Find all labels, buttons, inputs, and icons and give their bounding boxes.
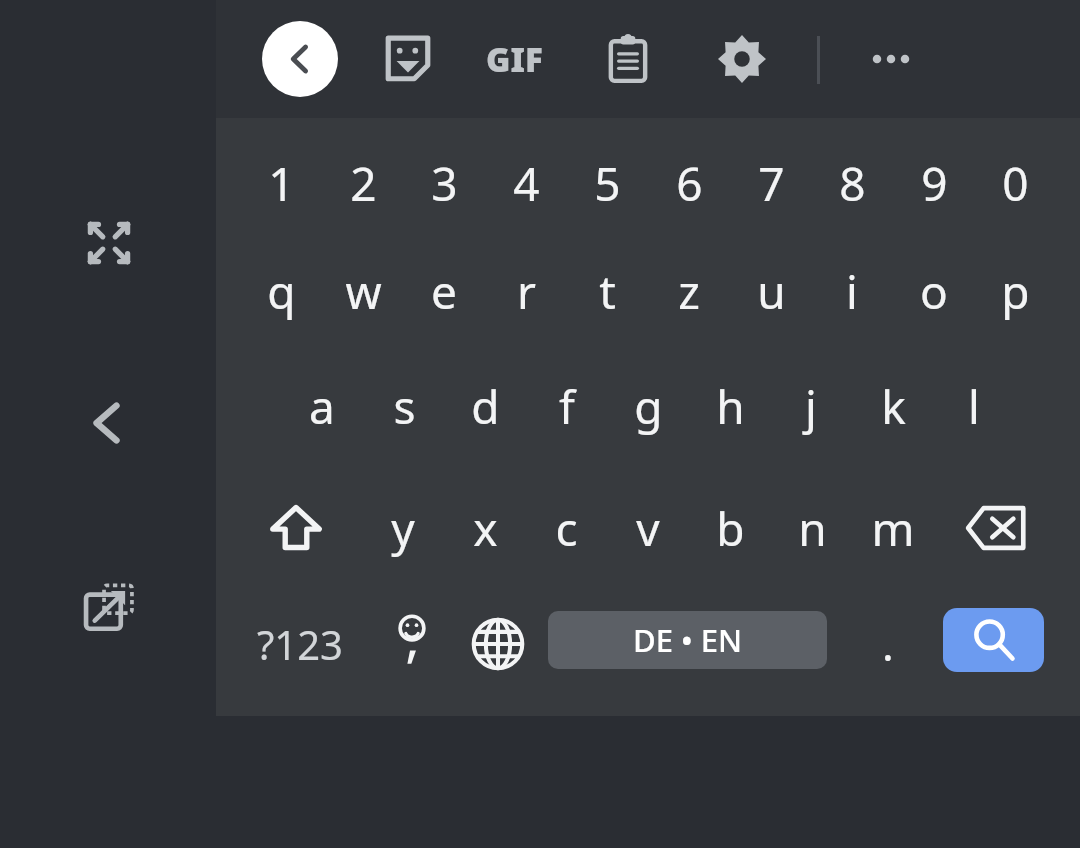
staticText: v (636, 497, 660, 560)
button[interactable]: w (322, 243, 404, 339)
button[interactable]: Back (78, 392, 140, 454)
button[interactable]: Search (943, 608, 1044, 672)
button[interactable]: b (689, 480, 771, 576)
button[interactable]: z (648, 243, 730, 339)
button[interactable]: 7 (730, 135, 812, 231)
staticText: l (968, 375, 980, 438)
button[interactable]: n (771, 480, 853, 576)
button[interactable]: Backspace (936, 480, 1056, 576)
button[interactable]: ?123 (240, 596, 360, 692)
button[interactable]: s (363, 358, 445, 454)
button[interactable]: Emoji and comma (368, 596, 456, 692)
button[interactable]: e (403, 243, 485, 339)
staticText: 9 (921, 152, 948, 215)
staticText: 4 (513, 152, 540, 215)
button[interactable]: q (240, 243, 322, 339)
button[interactable]: h (689, 358, 771, 454)
staticText: 7 (758, 152, 785, 215)
button[interactable]: p (974, 243, 1056, 339)
staticText: m (871, 497, 915, 560)
button[interactable]: 8 (811, 135, 893, 231)
button[interactable]: 3 (403, 135, 485, 231)
button[interactable]: a (281, 358, 363, 454)
button[interactable]: v (607, 480, 689, 576)
staticText: i (846, 260, 858, 323)
staticText: d (471, 375, 500, 438)
button[interactable]: Settings (707, 24, 777, 94)
button[interactable]: f (526, 358, 608, 454)
staticText: . (882, 614, 894, 674)
staticText: GIF (486, 37, 543, 82)
staticText: r (517, 260, 536, 323)
button[interactable]: More options (856, 24, 926, 94)
button[interactable]: r (485, 243, 567, 339)
button[interactable]: Open in new window (78, 576, 140, 638)
button[interactable]: y (362, 480, 444, 576)
button[interactable]: 5 (566, 135, 648, 231)
button[interactable]: t (566, 243, 648, 339)
button[interactable]: Change language (452, 596, 544, 692)
staticText: y (391, 497, 415, 560)
staticText: 1 (268, 152, 295, 215)
button[interactable]: Expand (78, 212, 140, 274)
staticText: 5 (594, 152, 621, 215)
staticText: f (559, 375, 575, 438)
staticText: a (309, 375, 335, 438)
staticText: 3 (431, 152, 458, 215)
button[interactable]: Stickers (373, 24, 443, 94)
staticText: j (805, 375, 817, 438)
staticText: DE • EN (633, 619, 743, 661)
staticText: 0 (1002, 152, 1029, 215)
staticText: 2 (350, 152, 377, 215)
staticText: ?123 (257, 617, 343, 671)
staticText: c (555, 497, 578, 560)
button[interactable]: j (770, 358, 852, 454)
staticText: k (881, 375, 906, 438)
button[interactable]: c (525, 480, 607, 576)
button[interactable]: 2 (322, 135, 404, 231)
staticText: o (920, 260, 948, 323)
staticText: h (716, 375, 745, 438)
staticText: t (599, 260, 616, 323)
button[interactable]: 6 (648, 135, 730, 231)
button[interactable]: x (444, 480, 526, 576)
staticText: w (345, 260, 382, 323)
button[interactable]: u (730, 243, 812, 339)
staticText: p (1001, 260, 1030, 323)
button[interactable]: 4 (485, 135, 567, 231)
button[interactable]: g (607, 358, 689, 454)
button[interactable]: 9 (893, 135, 975, 231)
staticText: n (798, 497, 827, 560)
button[interactable]: GIF (479, 24, 549, 94)
staticText: u (757, 260, 786, 323)
button[interactable]: l (933, 358, 1015, 454)
button[interactable]: o (893, 243, 975, 339)
staticText: s (393, 375, 416, 438)
button[interactable]: k (852, 358, 934, 454)
button[interactable]: . (846, 596, 930, 692)
button[interactable]: m (852, 480, 934, 576)
button[interactable]: 1 (240, 135, 322, 231)
staticText: z (678, 260, 700, 323)
staticText: x (473, 497, 498, 560)
staticText: 8 (839, 152, 866, 215)
button[interactable]: Back (262, 21, 338, 97)
staticText: 6 (676, 152, 703, 215)
button[interactable]: d (444, 358, 526, 454)
button[interactable]: i (811, 243, 893, 339)
staticText: b (716, 497, 745, 560)
staticText: q (267, 260, 296, 323)
button[interactable]: DE • EN (548, 611, 827, 669)
button[interactable]: Clipboard (593, 24, 663, 94)
button[interactable]: 0 (974, 135, 1056, 231)
button[interactable]: Shift (240, 480, 352, 576)
staticText: g (634, 375, 663, 438)
staticText: e (431, 260, 457, 323)
